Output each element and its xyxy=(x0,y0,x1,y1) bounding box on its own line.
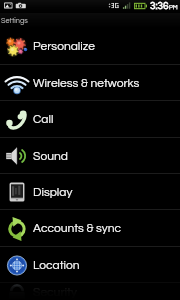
staticText: Settings xyxy=(1,17,28,25)
staticText: Location xyxy=(33,259,80,271)
staticText: Display xyxy=(33,186,73,198)
button[interactable]: Accounts & sync xyxy=(0,210,180,246)
staticText: PM xyxy=(169,4,178,10)
button[interactable]: Location xyxy=(0,247,180,282)
staticText: Wireless & networks xyxy=(33,77,140,89)
button[interactable]: Sound xyxy=(0,138,180,173)
staticText: Personalize xyxy=(33,40,95,52)
button[interactable]: Wireless & networks xyxy=(0,65,180,100)
button[interactable]: Security xyxy=(0,283,180,300)
button[interactable]: Display xyxy=(0,174,180,209)
staticText: Security xyxy=(33,286,77,298)
staticText: Call xyxy=(33,113,54,125)
staticText: Sound xyxy=(33,150,68,162)
staticText: 3:36 xyxy=(150,1,169,11)
staticText: Accounts & sync xyxy=(33,222,122,234)
button[interactable]: Personalize xyxy=(0,28,180,64)
button[interactable]: Call xyxy=(0,101,180,137)
